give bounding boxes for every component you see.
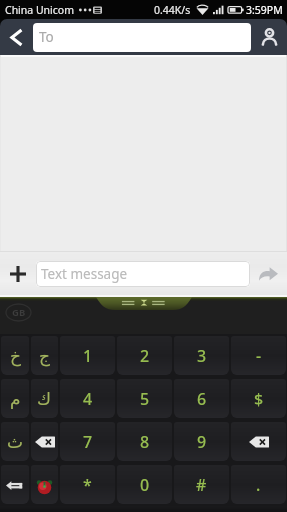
button[interactable]: Add contact — [251, 19, 287, 55]
staticText: $ — [254, 388, 264, 410]
button[interactable]: 8 — [117, 422, 172, 461]
staticText: 0.44K/s — [154, 3, 191, 17]
button[interactable]: Text message — [36, 261, 250, 287]
button[interactable]: 6 — [174, 379, 229, 418]
button[interactable]: 7 — [60, 422, 115, 461]
button[interactable] — [31, 465, 58, 504]
staticText: 8 — [140, 431, 150, 453]
staticText: Text message — [41, 265, 128, 283]
button[interactable]: ج — [31, 336, 58, 375]
staticText: 2 — [140, 345, 150, 367]
staticText: 0 — [140, 474, 150, 496]
button[interactable] — [1, 465, 29, 504]
staticText: China Unicom — [5, 3, 75, 17]
staticText: ث — [7, 432, 24, 452]
button[interactable]: Attach — [0, 252, 36, 295]
staticText: م — [10, 389, 21, 409]
staticText: GB — [12, 306, 26, 319]
button[interactable]: . — [231, 465, 286, 504]
staticText: - — [256, 345, 262, 367]
button[interactable]: To — [33, 23, 251, 52]
button[interactable]: # — [174, 465, 229, 504]
staticText: 5 — [140, 388, 150, 410]
staticText: ك — [37, 389, 52, 409]
button[interactable]: 4 — [60, 379, 115, 418]
button[interactable]: م — [1, 379, 29, 418]
staticText: 7 — [83, 431, 93, 453]
button[interactable]: ث — [1, 422, 29, 461]
staticText: . — [256, 474, 261, 496]
button[interactable]: 2 — [117, 336, 172, 375]
staticText: 6 — [197, 388, 207, 410]
button[interactable]: * — [60, 465, 115, 504]
staticText: 3:59PM — [246, 3, 283, 17]
button[interactable]: Send — [250, 252, 287, 295]
staticText: 4 — [83, 388, 93, 410]
button[interactable]: - — [231, 336, 286, 375]
staticText: 3 — [197, 345, 207, 367]
button[interactable]: 0 — [117, 465, 172, 504]
staticText: 9 — [197, 431, 207, 453]
staticText: * — [83, 474, 92, 496]
button[interactable]: Back — [0, 19, 33, 55]
button[interactable] — [31, 422, 58, 461]
button[interactable]: 9 — [174, 422, 229, 461]
staticText: 1 — [83, 345, 93, 367]
button[interactable]: ك — [31, 379, 58, 418]
staticText: ج — [39, 346, 50, 366]
button[interactable]: 1 — [60, 336, 115, 375]
button[interactable]: 5 — [117, 379, 172, 418]
staticText: To — [39, 28, 54, 46]
button[interactable]: 3 — [174, 336, 229, 375]
button[interactable] — [231, 422, 286, 461]
button[interactable]: خ — [1, 336, 29, 375]
staticText: # — [196, 474, 207, 496]
staticText: خ — [10, 346, 21, 366]
button[interactable]: $ — [231, 379, 286, 418]
